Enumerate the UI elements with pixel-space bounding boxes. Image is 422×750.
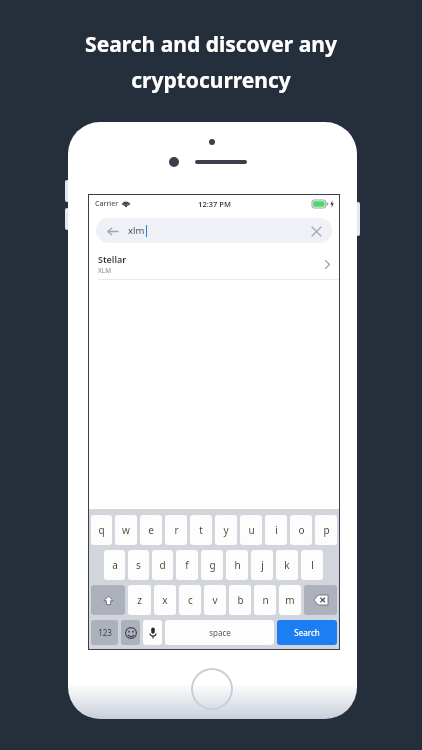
- button[interactable]: Search: [277, 620, 337, 645]
- staticText: i: [275, 523, 278, 537]
- staticText: c: [188, 593, 193, 607]
- button[interactable]: Back: [96, 218, 332, 243]
- staticText: 123: [98, 627, 112, 638]
- button[interactable]: Shift: [91, 585, 125, 615]
- staticText: a: [112, 558, 118, 572]
- staticText: x: [162, 593, 168, 607]
- staticText: d: [159, 558, 166, 572]
- staticText: b: [237, 593, 244, 607]
- button[interactable]: m: [279, 585, 301, 615]
- button[interactable]: n: [254, 585, 276, 615]
- button[interactable]: u: [240, 515, 262, 545]
- button[interactable]: Emoji: [121, 620, 140, 645]
- button[interactable]: d: [152, 550, 173, 580]
- button[interactable]: Voice input: [143, 620, 162, 645]
- button[interactable]: k: [276, 550, 298, 580]
- staticText: Search: [294, 627, 320, 638]
- button[interactable]: r: [165, 515, 187, 545]
- staticText: s: [136, 558, 141, 572]
- button[interactable]: Back: [104, 223, 120, 239]
- staticText: p: [323, 523, 330, 537]
- staticText: space: [209, 627, 231, 638]
- staticText: t: [199, 523, 203, 537]
- staticText: z: [137, 593, 142, 607]
- button[interactable]: l: [301, 550, 323, 580]
- staticText: k: [284, 558, 290, 572]
- staticText: Search and discover any: [85, 30, 337, 59]
- staticText: n: [262, 593, 269, 607]
- staticText: y: [223, 523, 229, 537]
- staticText: Stellar: [98, 253, 127, 265]
- staticText: Carrier: [95, 199, 119, 209]
- staticText: r: [174, 523, 179, 537]
- button[interactable]: x: [154, 585, 176, 615]
- button[interactable]: j: [251, 550, 273, 580]
- staticText: g: [209, 558, 216, 572]
- staticText: q: [98, 523, 105, 537]
- staticText: u: [248, 523, 255, 537]
- button[interactable]: t: [190, 515, 212, 545]
- button[interactable]: i: [265, 515, 287, 545]
- staticText: v: [212, 593, 218, 607]
- button[interactable]: h: [226, 550, 248, 580]
- button[interactable]: o: [290, 515, 312, 545]
- button[interactable]: a: [104, 550, 125, 580]
- button[interactable]: g: [201, 550, 223, 580]
- button[interactable]: 123: [91, 620, 118, 645]
- button[interactable]: f: [176, 550, 198, 580]
- staticText: j: [261, 558, 264, 572]
- staticText: m: [285, 593, 295, 607]
- button[interactable]: c: [179, 585, 201, 615]
- staticText: xlm: [128, 224, 145, 237]
- button[interactable]: Backspace: [304, 585, 337, 615]
- staticText: f: [185, 558, 189, 572]
- staticText: w: [122, 523, 130, 537]
- staticText: XLM: [98, 266, 112, 275]
- staticText: h: [234, 558, 241, 572]
- staticText: l: [311, 558, 314, 572]
- button[interactable]: q: [91, 515, 112, 545]
- button[interactable]: Clear search: [308, 223, 324, 239]
- button[interactable]: p: [315, 515, 337, 545]
- button[interactable]: w: [115, 515, 137, 545]
- button[interactable]: v: [204, 585, 226, 615]
- staticText: o: [298, 523, 305, 537]
- button[interactable]: z: [128, 585, 151, 615]
- staticText: e: [148, 523, 154, 537]
- staticText: 12:37 PM: [198, 199, 231, 209]
- button[interactable]: s: [128, 550, 149, 580]
- staticText: cryptocurrency: [131, 66, 291, 95]
- button[interactable]: b: [229, 585, 251, 615]
- button[interactable]: e: [140, 515, 162, 545]
- button[interactable]: space: [165, 620, 274, 645]
- button[interactable]: Stellar: [89, 249, 339, 280]
- button[interactable]: y: [215, 515, 237, 545]
